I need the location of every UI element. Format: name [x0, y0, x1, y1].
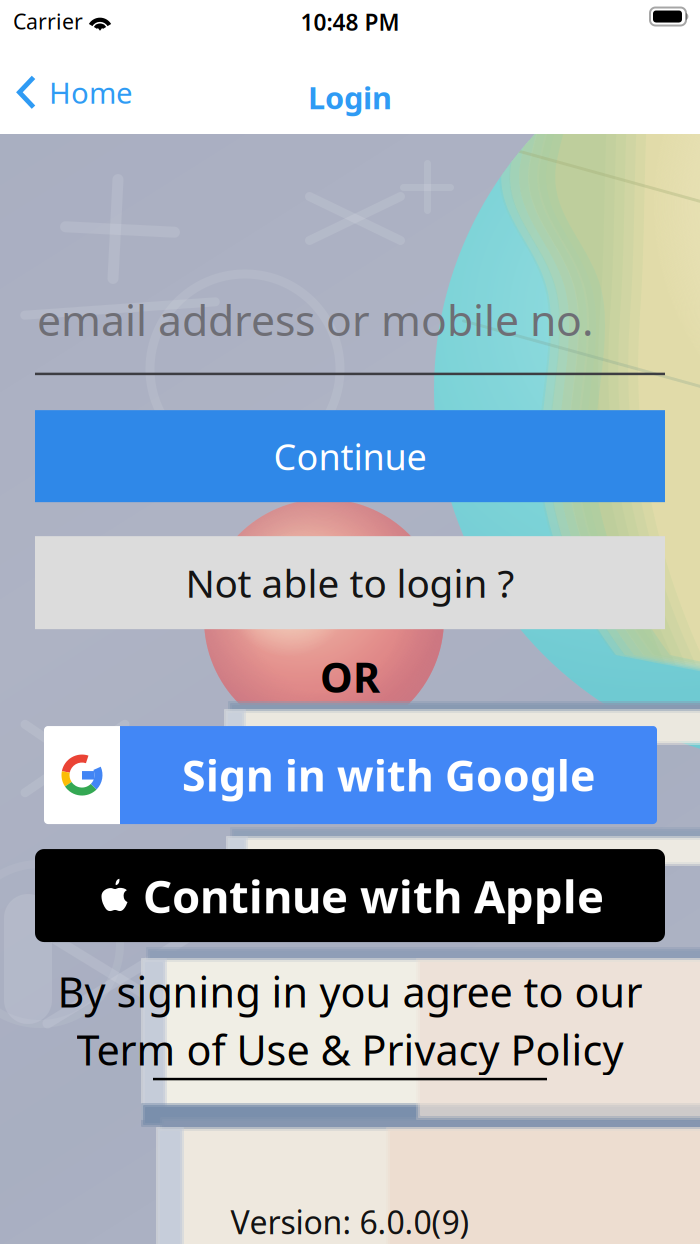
staticText: Not able to login ? [185, 557, 514, 608]
staticText: email address or mobile no. [37, 291, 593, 348]
staticText: Home [49, 73, 133, 112]
staticText: Version: 6.0.0(9) [230, 1200, 469, 1243]
button[interactable]: Continue with Apple [0, 849, 700, 942]
button[interactable]: Continue [0, 410, 700, 502]
staticText: 10:48 PM [300, 7, 399, 37]
staticText: Continue [273, 432, 426, 480]
staticText: Login [308, 77, 392, 118]
button[interactable]: Term of Use & Privacy Policy [76, 1022, 623, 1080]
staticText: By signing in you agree to our [57, 964, 642, 1019]
button[interactable]: Not able to login ? [0, 536, 700, 629]
staticText: OR [320, 649, 380, 704]
staticText: Continue with Apple [143, 865, 604, 926]
button[interactable]: Sign in with Google [0, 726, 700, 824]
staticText: Sign in with Google [182, 747, 595, 803]
staticText: Term of Use & Privacy Policy [76, 1022, 623, 1077]
button[interactable]: Home [0, 67, 149, 119]
staticText: Carrier [13, 7, 83, 35]
